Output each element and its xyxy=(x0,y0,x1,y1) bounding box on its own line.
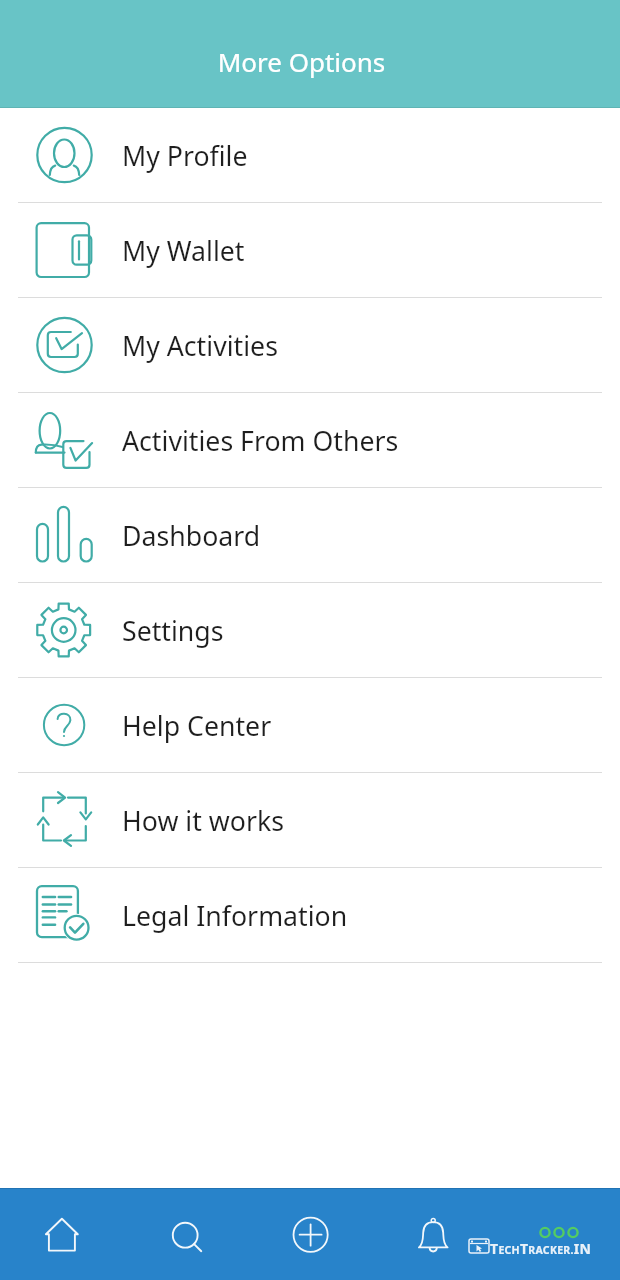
staticText: Legal Information xyxy=(122,897,348,933)
staticText: Activities From Others xyxy=(122,422,399,458)
staticText: How it works xyxy=(122,802,284,838)
staticText: TECHTRACKER.IN xyxy=(490,1239,592,1258)
staticText: My Activities xyxy=(122,327,278,363)
button[interactable]: Search xyxy=(124,1188,248,1280)
button[interactable]: My Activities xyxy=(0,298,620,393)
staticText: Settings xyxy=(122,612,224,648)
staticText: Dashboard xyxy=(122,517,261,553)
button[interactable]: Activities From Others xyxy=(0,393,620,488)
staticText: More Options xyxy=(0,44,603,79)
button[interactable]: Settings xyxy=(0,583,620,678)
staticText: My Profile xyxy=(122,137,248,173)
button[interactable]: Dashboard xyxy=(0,488,620,583)
button[interactable]: How it works xyxy=(0,773,620,868)
button[interactable]: Notifications xyxy=(372,1188,496,1280)
button[interactable]: Home xyxy=(0,1188,124,1280)
button[interactable]: Help Center xyxy=(0,678,620,773)
staticText: My Wallet xyxy=(122,232,245,268)
button[interactable]: Legal Information xyxy=(0,868,620,963)
staticText: Help Center xyxy=(122,707,272,743)
button[interactable]: Account xyxy=(496,1188,620,1280)
button[interactable]: My Wallet xyxy=(0,203,620,298)
button[interactable]: My Profile xyxy=(0,108,620,203)
button[interactable]: Add xyxy=(248,1188,372,1280)
